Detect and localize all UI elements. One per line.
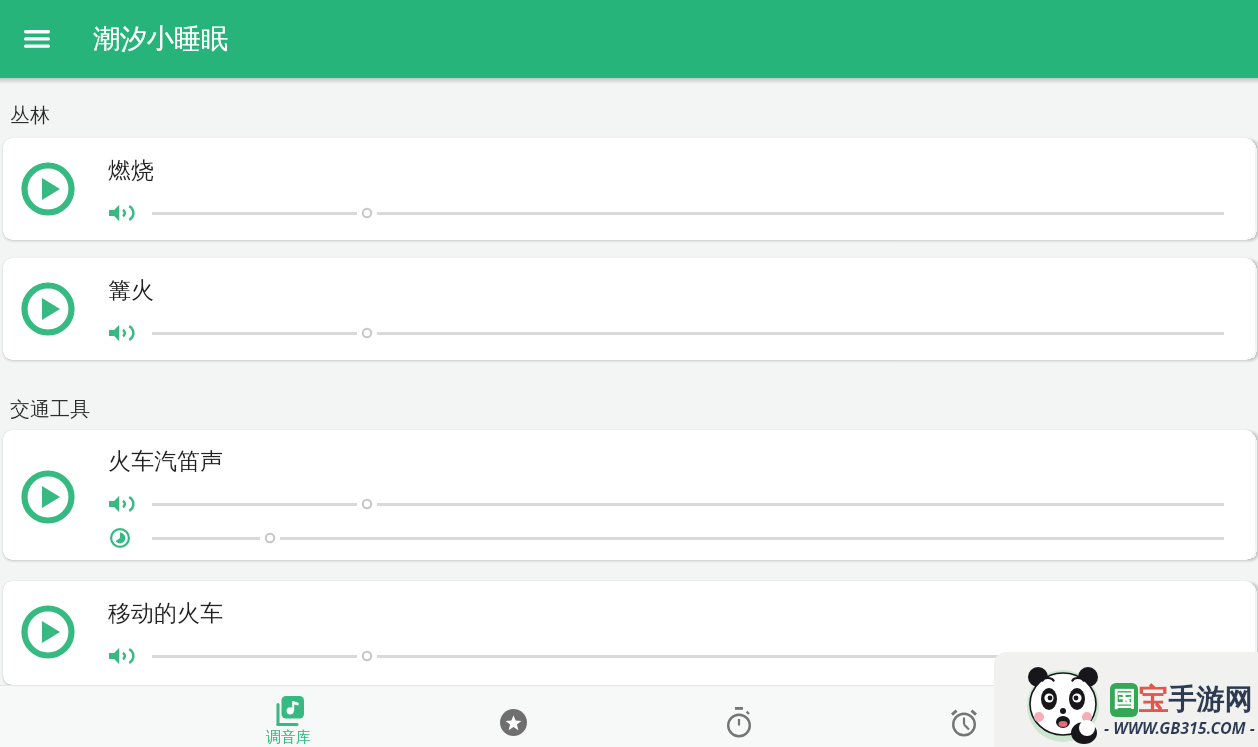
button[interactable]: 篝火 xyxy=(3,258,1255,360)
button[interactable] xyxy=(626,685,851,747)
staticText: 宝 xyxy=(1138,681,1168,719)
button[interactable]: 火车汽笛声 xyxy=(3,430,1255,560)
staticText: - WWW.GB315.COM - xyxy=(1104,717,1256,739)
staticText: 移动的火车 xyxy=(108,599,223,628)
button[interactable] xyxy=(14,19,60,59)
button[interactable] xyxy=(21,282,75,336)
staticText: 国 xyxy=(1113,686,1135,714)
button[interactable]: 调音库 xyxy=(176,685,401,747)
staticText: 火车汽笛声 xyxy=(108,447,223,476)
button[interactable] xyxy=(851,685,1076,747)
staticText: 篝火 xyxy=(108,276,154,305)
staticText: 手游网 xyxy=(1168,682,1252,717)
staticText: 交通工具 xyxy=(10,397,90,422)
button[interactable] xyxy=(401,685,626,747)
button[interactable]: 移动的火车 xyxy=(3,581,1255,685)
button[interactable]: 燃烧 xyxy=(3,138,1255,240)
staticText: 燃烧 xyxy=(108,156,154,185)
staticText: 丛林 xyxy=(10,103,50,128)
button[interactable] xyxy=(21,162,75,216)
staticText: 潮汐小睡眠 xyxy=(93,22,228,56)
button[interactable] xyxy=(21,470,75,524)
staticText: 调音库 xyxy=(266,728,311,747)
button[interactable] xyxy=(21,605,75,659)
